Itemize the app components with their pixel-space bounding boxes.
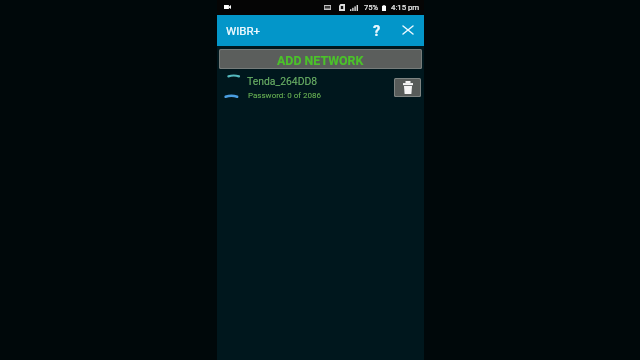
- button[interactable]: ADD NETWORK: [220, 50, 421, 68]
- staticText: Tenda_264DD8: [247, 75, 318, 87]
- button[interactable]: Tenda_264DD8: [217, 69, 424, 106]
- staticText: Password: 0 of 2086: [248, 91, 322, 100]
- staticText: ADD NETWORK: [277, 53, 364, 68]
- staticText: WIBR+: [226, 24, 261, 37]
- staticText: 75%: [364, 3, 379, 12]
- button[interactable]: Help: [362, 15, 393, 46]
- button[interactable]: Delete network: [395, 79, 420, 96]
- staticText: ?: [373, 23, 381, 40]
- staticText: 4:15 pm: [391, 3, 420, 12]
- button[interactable]: Close: [393, 15, 424, 46]
